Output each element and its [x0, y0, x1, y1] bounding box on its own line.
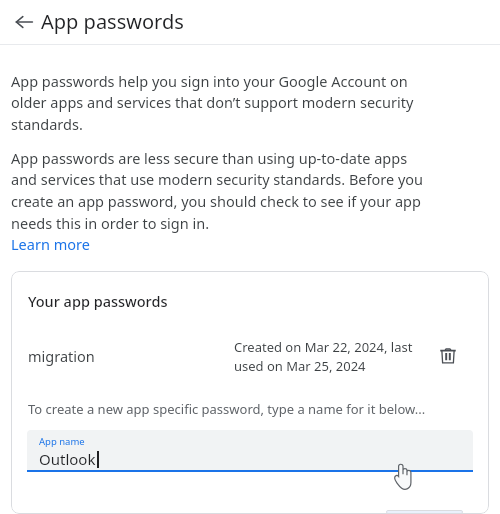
- button[interactable]: Learn more: [11, 234, 90, 254]
- staticText: Learn more: [11, 234, 90, 254]
- staticText: Create: [403, 510, 446, 514]
- button[interactable]: migration: [11, 332, 489, 380]
- button[interactable]: Back: [4, 2, 44, 42]
- button[interactable]: Delete app password: [431, 339, 465, 373]
- staticText: Created on Mar 22, 2024, last used on Ma…: [234, 338, 431, 375]
- staticText: App passwords are less secure than using…: [11, 148, 429, 234]
- staticText: App passwords: [41, 8, 184, 35]
- staticText: Outlook: [39, 449, 96, 469]
- staticText: App passwords help you sign into your Go…: [11, 71, 437, 135]
- button[interactable]: Create: [386, 510, 463, 514]
- staticText: Your app passwords: [28, 291, 168, 311]
- staticText: App name: [39, 435, 85, 448]
- staticText: migration: [28, 346, 234, 366]
- staticText: To create a new app specific password, t…: [28, 400, 426, 418]
- button[interactable]: App name: [27, 430, 473, 472]
